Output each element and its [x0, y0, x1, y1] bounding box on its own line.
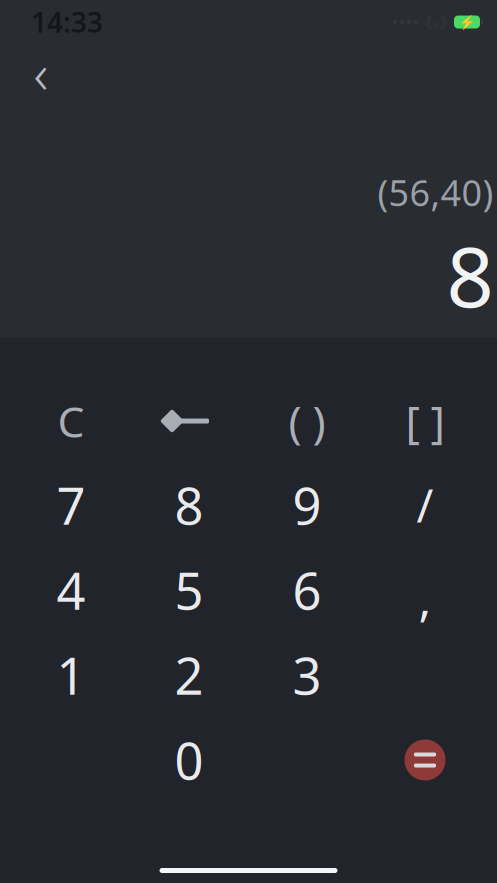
staticText: 8 [174, 471, 203, 539]
staticText: 8 [446, 220, 493, 330]
staticText: ( ) [288, 392, 325, 450]
button[interactable]: Equals [370, 718, 480, 802]
staticText: [ ] [405, 392, 444, 450]
staticText: (56,40) [377, 168, 493, 216]
staticText: 14:33 [31, 3, 103, 41]
staticText: 5 [174, 556, 203, 624]
staticText: , [418, 566, 431, 630]
staticText: ⚡ [458, 14, 475, 30]
button[interactable]: 7 [16, 463, 126, 547]
staticText: / [416, 475, 433, 535]
button[interactable]: 3 [252, 633, 362, 717]
staticText: 2 [174, 641, 203, 709]
button[interactable]: Comma [370, 556, 480, 640]
staticText: 4 [56, 556, 85, 624]
button[interactable]: Brackets [370, 379, 480, 463]
button[interactable]: 8 [134, 463, 244, 547]
staticText: 1 [56, 641, 85, 709]
staticText: 3 [292, 641, 321, 709]
button[interactable]: Backspace [134, 379, 244, 463]
button[interactable]: 6 [252, 548, 362, 632]
staticText: ‹ [33, 35, 48, 109]
button[interactable]: 1 [16, 633, 126, 717]
button[interactable]: Parentheses [252, 379, 362, 463]
button[interactable]: 4 [16, 548, 126, 632]
button[interactable]: Divide [370, 463, 480, 547]
button[interactable]: Back [13, 44, 69, 100]
staticText: 7 [56, 471, 85, 539]
button[interactable]: Clear [16, 379, 126, 463]
button[interactable]: 2 [134, 633, 244, 717]
button[interactable]: 9 [252, 463, 362, 547]
staticText: 6 [292, 556, 321, 624]
staticText: 0 [174, 726, 203, 794]
staticText: 9 [292, 471, 321, 539]
button[interactable]: 5 [134, 548, 244, 632]
staticText: C [57, 393, 84, 449]
button[interactable]: 0 [134, 718, 244, 802]
